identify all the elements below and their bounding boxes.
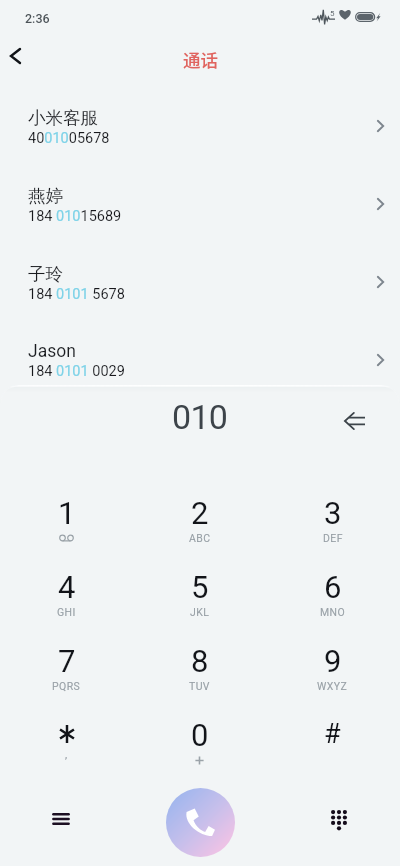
- staticText: Jason: [28, 341, 76, 362]
- staticText: 184 01015689: [28, 208, 122, 225]
- button[interactable]: 燕婷: [0, 168, 400, 246]
- button[interactable]: 子玲: [0, 246, 400, 324]
- staticText: GHI: [57, 606, 76, 618]
- button[interactable]: 9: [266, 641, 399, 715]
- button[interactable]: Jason: [0, 324, 400, 402]
- button[interactable]: Menu: [37, 795, 85, 843]
- staticText: 2: [191, 495, 209, 531]
- button[interactable]: Call: [166, 788, 235, 857]
- staticText: 5: [330, 9, 335, 18]
- staticText: 2:36: [25, 11, 50, 26]
- staticText: 燕婷: [28, 185, 63, 207]
- button[interactable]: 3: [266, 493, 399, 567]
- staticText: JKL: [190, 606, 210, 618]
- staticText: TUV: [189, 680, 210, 692]
- staticText: 7: [58, 643, 76, 679]
- staticText: 3: [324, 495, 342, 531]
- button[interactable]: 7: [0, 641, 133, 715]
- button[interactable]: #: [266, 715, 399, 789]
- button[interactable]: ,: [0, 715, 133, 789]
- button[interactable]: 0: [133, 715, 266, 789]
- button[interactable]: 5: [133, 567, 266, 641]
- staticText: 184 0101 0029: [28, 363, 125, 380]
- button[interactable]: 4: [0, 567, 133, 641]
- staticText: DEF: [323, 532, 343, 544]
- staticText: WXYZ: [317, 680, 348, 692]
- staticText: #: [324, 718, 341, 750]
- button[interactable]: Dialpad: [315, 796, 363, 844]
- staticText: 6: [324, 569, 342, 605]
- staticText: 子玲: [28, 263, 63, 285]
- staticText: 8: [191, 643, 209, 679]
- staticText: ABC: [189, 532, 211, 544]
- button[interactable]: 小米客服: [0, 90, 400, 168]
- staticText: 1: [58, 495, 76, 531]
- staticText: 5: [191, 569, 209, 605]
- button[interactable]: Backspace: [330, 397, 378, 445]
- staticText: ,: [65, 748, 68, 761]
- button[interactable]: 2: [133, 493, 266, 567]
- button[interactable]: 6: [266, 567, 399, 641]
- staticText: 9: [324, 643, 342, 679]
- staticText: 4: [58, 569, 76, 605]
- button[interactable]: 1: [0, 493, 133, 567]
- staticText: 通话: [183, 47, 218, 72]
- staticText: PQRS: [52, 680, 81, 692]
- button[interactable]: Back: [0, 34, 37, 78]
- staticText: 0: [191, 717, 209, 753]
- staticText: 小米客服: [28, 107, 98, 129]
- staticText: 010: [172, 397, 228, 437]
- staticText: 4001005678: [28, 130, 110, 147]
- staticText: 184 0101 5678: [28, 286, 125, 303]
- button[interactable]: 8: [133, 641, 266, 715]
- staticText: MNO: [320, 606, 346, 618]
